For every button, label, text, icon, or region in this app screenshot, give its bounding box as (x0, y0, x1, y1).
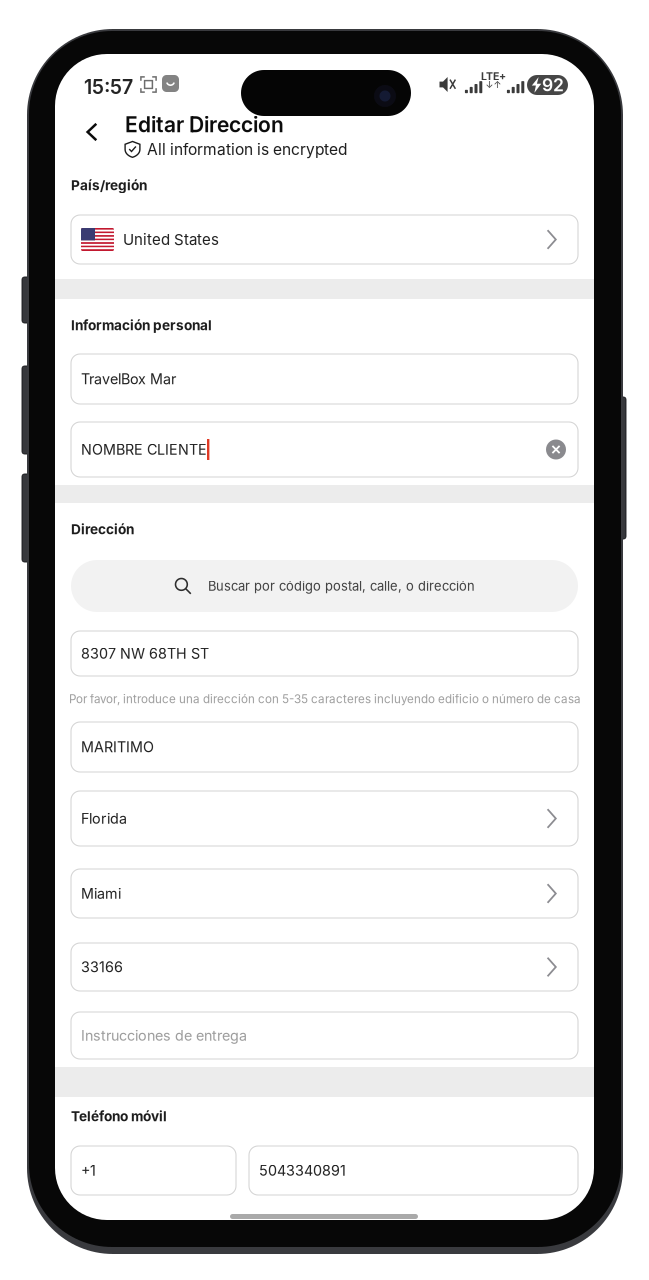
button[interactable]: +1 (71, 1146, 236, 1195)
button[interactable]: United States (71, 215, 578, 264)
staticText: All information is encrypted (147, 140, 347, 159)
staticText: Por favor, introduce una dirección con 5… (69, 692, 581, 706)
button[interactable]: Buscar por código postal, calle, o direc… (71, 560, 578, 612)
staticText: País/región (71, 177, 147, 193)
button[interactable]: NOMBRE CLIENTE (71, 422, 578, 477)
staticText: Dirección (71, 521, 134, 537)
button[interactable]: 8307 NW 68TH ST (71, 631, 578, 676)
staticText: Florida (81, 810, 127, 827)
button[interactable]: Miami (71, 869, 578, 918)
staticText: 5043340891 (259, 1162, 346, 1179)
staticText: 8307 NW 68TH ST (81, 645, 209, 662)
staticText: Miami (81, 885, 121, 902)
staticText: Teléfono móvil (71, 1108, 167, 1124)
button[interactable]: TravelBox Mar (71, 354, 578, 404)
staticText: TravelBox Mar (81, 370, 176, 388)
staticText: Buscar por código postal, calle, o direc… (208, 578, 475, 594)
button[interactable]: Back (70, 112, 114, 152)
staticText: +1 (81, 1162, 96, 1179)
staticText: LTE+ (481, 70, 506, 83)
button[interactable]: 33166 (71, 943, 578, 991)
staticText: United States (123, 230, 219, 248)
staticText: 33166 (81, 958, 123, 976)
staticText: Instrucciones de entrega (81, 1027, 247, 1044)
staticText: Información personal (71, 317, 212, 333)
staticText: NOMBRE CLIENTE (81, 441, 207, 458)
button[interactable]: Instrucciones de entrega (71, 1012, 578, 1059)
staticText: 15:57 (84, 75, 133, 99)
button[interactable]: MARITIMO (71, 722, 578, 772)
button[interactable]: 5043340891 (249, 1146, 578, 1195)
button[interactable]: Florida (71, 791, 578, 846)
staticText: Editar Direccion (125, 112, 284, 137)
staticText: ↓↑ (485, 79, 501, 90)
staticText: MARITIMO (81, 738, 154, 756)
staticText: 92 (542, 74, 564, 96)
